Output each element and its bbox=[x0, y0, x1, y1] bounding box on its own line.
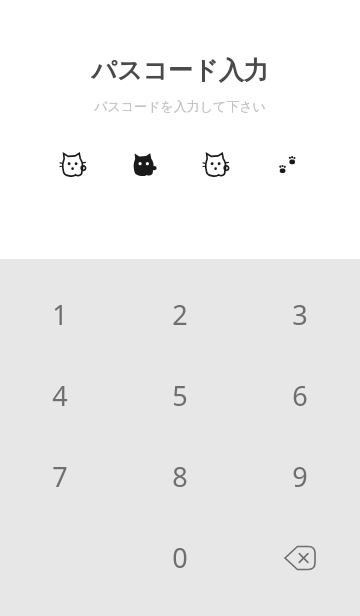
staticText: 1 bbox=[52, 296, 68, 333]
button[interactable]: 3 bbox=[240, 273, 360, 355]
button[interactable]: 0 bbox=[120, 517, 240, 598]
staticText: パスコードを入力して下さい bbox=[94, 98, 266, 114]
staticText: 2 bbox=[172, 296, 188, 333]
button[interactable]: 7 bbox=[0, 436, 120, 517]
staticText: 6 bbox=[292, 377, 308, 414]
button[interactable]: 6 bbox=[240, 355, 360, 436]
staticText: 7 bbox=[52, 458, 68, 495]
staticText: 4 bbox=[52, 377, 68, 414]
button[interactable]: 2 bbox=[120, 273, 240, 355]
button[interactable]: 4 bbox=[0, 355, 120, 436]
staticText: 9 bbox=[292, 458, 308, 495]
button[interactable]: 9 bbox=[240, 436, 360, 517]
staticText: 5 bbox=[172, 377, 188, 414]
staticText: 3 bbox=[292, 296, 308, 333]
button[interactable]: 5 bbox=[120, 355, 240, 436]
button[interactable]: 8 bbox=[120, 436, 240, 517]
staticText: 8 bbox=[172, 458, 188, 495]
staticText: 0 bbox=[172, 539, 188, 576]
staticText: パスコード入力 bbox=[91, 55, 269, 86]
button[interactable]: 1 bbox=[0, 273, 120, 355]
button[interactable]: Backspace bbox=[240, 517, 360, 598]
